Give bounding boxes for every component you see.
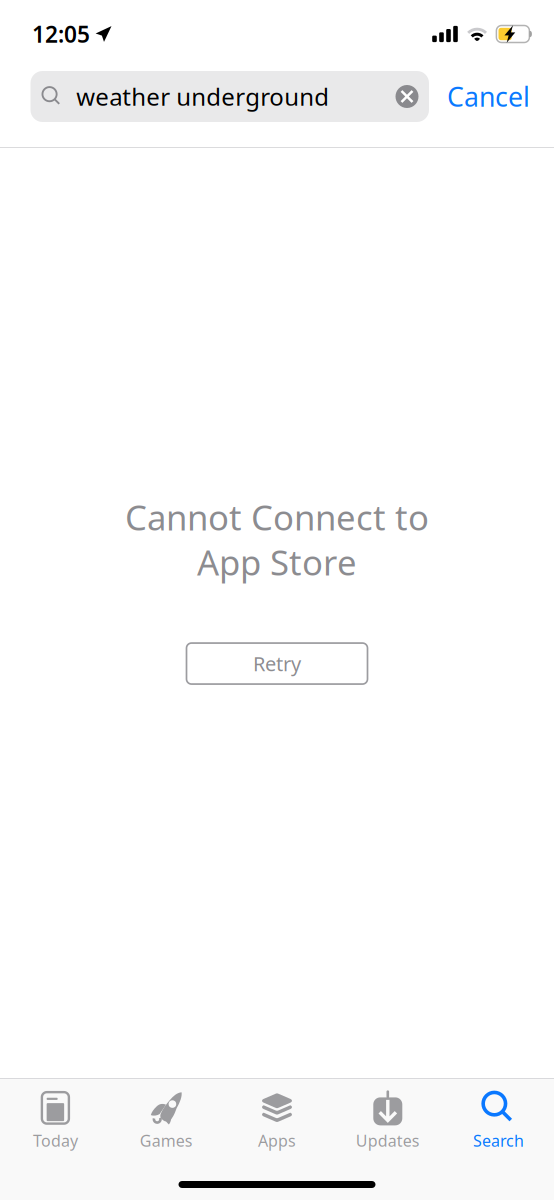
staticText: Games bbox=[140, 1130, 193, 1151]
staticText: App Store bbox=[197, 539, 357, 585]
button[interactable]: Cancel bbox=[429, 71, 541, 122]
staticText: weather underground bbox=[76, 81, 329, 112]
staticText: Retry bbox=[253, 650, 301, 677]
staticText: Apps bbox=[258, 1130, 296, 1151]
staticText: Cannot Connect to bbox=[125, 494, 429, 540]
staticText: Today bbox=[33, 1130, 78, 1151]
staticText: 12:05 bbox=[32, 19, 90, 49]
button[interactable]: Clear search text bbox=[389, 71, 429, 122]
button[interactable]: Games bbox=[111, 1079, 222, 1151]
staticText: Search bbox=[473, 1130, 524, 1151]
button[interactable]: Updates bbox=[332, 1079, 443, 1151]
button[interactable]: Search bbox=[443, 1079, 554, 1151]
staticText: Updates bbox=[356, 1130, 420, 1151]
button[interactable]: Apps bbox=[222, 1079, 332, 1151]
button[interactable]: Retry bbox=[186, 643, 367, 684]
button[interactable]: Today bbox=[0, 1079, 111, 1151]
staticText: Cancel bbox=[447, 79, 530, 114]
